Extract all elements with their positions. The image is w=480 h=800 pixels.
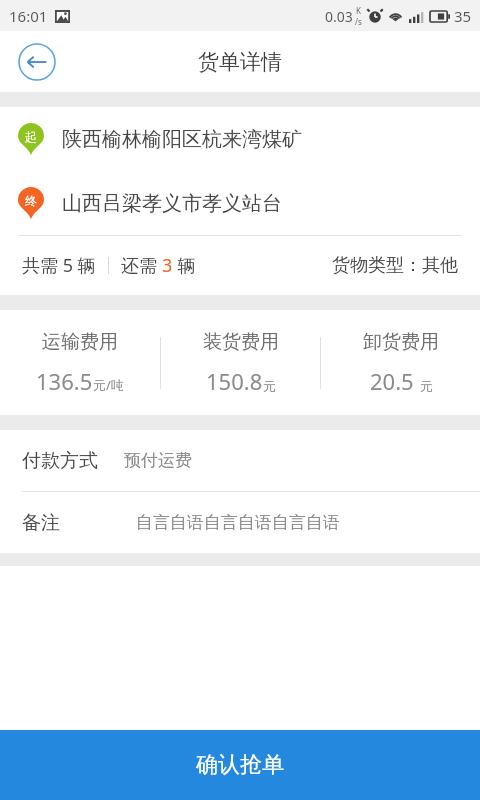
staticText: 起 bbox=[25, 129, 37, 144]
staticText: 3 bbox=[162, 253, 173, 278]
staticText: 136.5 bbox=[36, 366, 93, 396]
staticText: 卸货费用 bbox=[363, 330, 439, 354]
staticText: 共需 5 辆 bbox=[22, 253, 96, 278]
button[interactable]: Back bbox=[14, 39, 60, 85]
staticText: 付款方式 bbox=[22, 449, 98, 473]
staticText: 辆 bbox=[173, 253, 196, 278]
staticText: 0.03 bbox=[325, 7, 353, 26]
staticText: 陕西榆林榆阳区杭来湾煤矿 bbox=[62, 127, 302, 152]
staticText: K bbox=[356, 5, 361, 16]
staticText: 确认抢单 bbox=[196, 751, 284, 779]
button[interactable]: 确认抢单 bbox=[0, 730, 480, 800]
staticText: 元/吨 bbox=[93, 376, 124, 394]
staticText: 20.5 bbox=[370, 366, 420, 396]
staticText: 元 bbox=[420, 378, 433, 394]
staticText: 35 bbox=[454, 6, 472, 26]
staticText: 终 bbox=[25, 193, 37, 208]
button[interactable]: 起 bbox=[0, 107, 480, 171]
staticText: 16:01 bbox=[9, 6, 48, 26]
staticText: 货物类型：其他 bbox=[332, 254, 458, 277]
staticText: 预付运费 bbox=[124, 450, 192, 471]
staticText: 自言自语自言自语自言自语 bbox=[136, 512, 340, 533]
staticText: 150.8 bbox=[206, 366, 263, 396]
staticText: 货单详情 bbox=[198, 49, 282, 75]
staticText: 还需 bbox=[121, 253, 162, 278]
staticText: /s bbox=[355, 16, 362, 27]
staticText: 装货费用 bbox=[203, 330, 279, 354]
staticText: 山西吕梁孝义市孝义站台 bbox=[62, 191, 282, 216]
staticText: 运输费用 bbox=[42, 330, 118, 354]
staticText: 元 bbox=[263, 378, 276, 394]
button[interactable]: 终 bbox=[0, 171, 480, 235]
staticText: 备注 bbox=[22, 511, 112, 535]
